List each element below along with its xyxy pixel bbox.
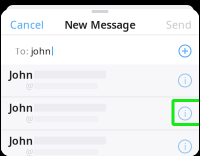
- button[interactable]: Contact info: [172, 100, 198, 126]
- staticText: @: [26, 114, 33, 124]
- button[interactable]: Contact info: [172, 133, 198, 156]
- staticText: John: [9, 133, 33, 148]
- staticText: @: [26, 81, 33, 91]
- staticText: New Message: [64, 17, 135, 32]
- staticText: @: [26, 147, 33, 156]
- button[interactable]: John: [1, 97, 199, 129]
- staticText: John: [9, 67, 33, 82]
- staticText: John: [9, 100, 33, 115]
- button[interactable]: Cancel: [1, 14, 44, 34]
- button[interactable]: New Message: [55, 14, 145, 34]
- staticText: Cancel: [10, 17, 44, 32]
- staticText: Send: [166, 17, 192, 32]
- button[interactable]: Add contact: [171, 37, 199, 65]
- staticText: john: [31, 45, 51, 57]
- button[interactable]: John: [1, 130, 199, 156]
- button[interactable]: Send: [166, 14, 199, 34]
- staticText: i: [184, 140, 186, 153]
- staticText: To:: [15, 45, 29, 57]
- staticText: i: [184, 107, 186, 120]
- button[interactable]: Contact info: [172, 67, 198, 93]
- button[interactable]: John: [1, 64, 199, 96]
- staticText: i: [184, 74, 186, 87]
